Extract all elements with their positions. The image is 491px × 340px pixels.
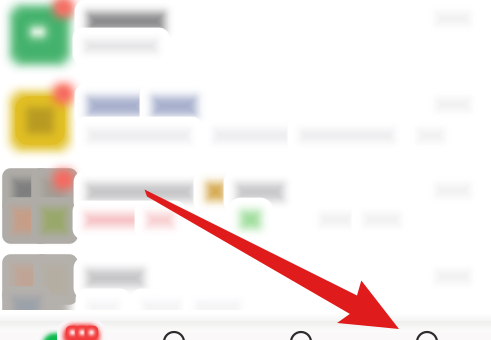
button[interactable] [0, 0, 491, 86]
button[interactable]: Chats [0, 321, 123, 340]
button[interactable]: Discover [239, 321, 362, 340]
button[interactable] [0, 0, 491, 86]
button[interactable] [0, 0, 491, 86]
button[interactable]: Contacts [112, 321, 235, 340]
button[interactable] [0, 0, 491, 86]
button[interactable]: Me [365, 321, 488, 340]
